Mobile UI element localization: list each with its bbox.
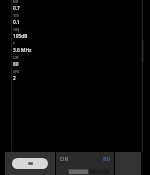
- staticText: MI: [13, 0, 19, 5]
- staticText: SRI: [13, 69, 20, 75]
- staticText: 80: [103, 155, 110, 163]
- staticText: 2: [13, 75, 16, 82]
- staticText: GN: [13, 27, 20, 33]
- staticText: 105dB: [13, 33, 28, 40]
- staticText: 3.6 MHz: [13, 47, 32, 54]
- staticText: DR: [13, 55, 19, 61]
- staticText: 0.7: [13, 5, 20, 12]
- staticText: 80: [13, 61, 19, 68]
- staticText: DR: [60, 155, 69, 163]
- staticText: F: [13, 41, 16, 47]
- staticText: 0.1: [13, 19, 20, 26]
- button[interactable]: Freeze probe: [5, 152, 55, 175]
- staticText: TIS: [13, 13, 20, 19]
- button[interactable]: DR: [56, 152, 114, 175]
